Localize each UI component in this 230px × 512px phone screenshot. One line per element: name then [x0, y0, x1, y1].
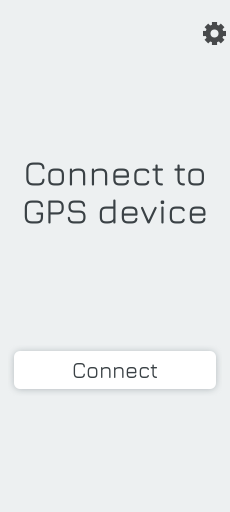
staticText: Connect to: [23, 152, 206, 193]
button[interactable]: Connect: [14, 351, 216, 389]
staticText: Connect: [72, 357, 158, 383]
button[interactable]: Settings: [197, 16, 230, 51]
staticText: GPS device: [22, 190, 208, 231]
